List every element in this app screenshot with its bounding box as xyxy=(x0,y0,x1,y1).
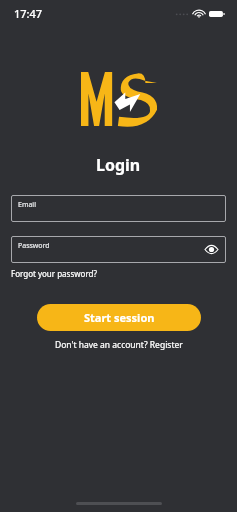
staticText: Login xyxy=(96,154,141,176)
button[interactable]: Password xyxy=(11,236,226,263)
button[interactable]: Start session xyxy=(37,304,201,331)
staticText: Forgot your password? xyxy=(11,268,97,279)
button[interactable]: Email xyxy=(11,195,226,222)
staticText: Don't have an account? Register xyxy=(55,339,183,351)
staticText: Email xyxy=(18,200,36,210)
staticText: 17:47 xyxy=(14,6,43,21)
button[interactable]: Don't have an account? Register xyxy=(55,339,183,351)
staticText: Start session xyxy=(84,310,155,325)
button[interactable]: Forgot your password? xyxy=(11,268,97,279)
staticText: Password xyxy=(18,241,50,251)
button[interactable]: Show password xyxy=(204,242,219,257)
